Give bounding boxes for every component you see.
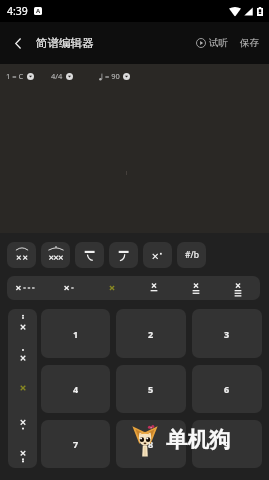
staticText: 简谱编辑器 [36, 36, 94, 50]
button[interactable]: octave -2 [8, 309, 37, 340]
button[interactable]: 4/4 [49, 68, 75, 84]
staticText: 9 [224, 438, 230, 450]
button[interactable]: note 2 [116, 309, 186, 358]
button[interactable]: octave 2 [8, 436, 37, 468]
staticText: 4 [73, 383, 79, 395]
button[interactable]: sharp flat [177, 242, 206, 268]
staticText: 8 [148, 438, 154, 450]
staticText: 单机狗 [166, 426, 231, 453]
staticText: 保存 [240, 37, 259, 49]
staticText: 2 [148, 328, 154, 340]
button[interactable]: grace note curve [75, 242, 104, 268]
button[interactable]: duration 3 [133, 276, 175, 300]
staticText: 1 = C [6, 71, 24, 81]
button[interactable]: octave -1 [8, 340, 37, 372]
button[interactable]: Back [0, 22, 36, 64]
button[interactable]: triplet [41, 242, 70, 268]
staticText: 6 [224, 383, 230, 395]
button[interactable]: note 5 [116, 365, 186, 413]
button[interactable]: duration 0 [7, 276, 49, 300]
staticText: 7 [73, 438, 79, 450]
button[interactable]: duration 4 [175, 276, 217, 300]
button[interactable]: grace note hook [109, 242, 138, 268]
staticText: 4/4 [51, 71, 63, 81]
staticText: 5 [148, 383, 154, 395]
button[interactable]: note 6 [192, 365, 262, 413]
button[interactable]: duration 2 [91, 276, 133, 300]
button[interactable]: octave 0 [8, 372, 37, 404]
button[interactable]: note 9 [192, 420, 262, 468]
staticText: = 90 [105, 71, 120, 81]
button[interactable]: note 1 [41, 309, 110, 358]
button[interactable]: = 90 [97, 68, 132, 84]
button[interactable]: dotted note [143, 242, 172, 268]
staticText: #/b [185, 249, 199, 261]
button[interactable]: note 3 [192, 309, 262, 358]
staticText: A [36, 7, 41, 15]
button[interactable]: 保存 [236, 31, 263, 55]
button[interactable]: duration 1 [49, 276, 91, 300]
button[interactable]: octave 1 [8, 404, 37, 436]
button[interactable]: 试听 [192, 31, 232, 55]
button[interactable]: tie two notes [7, 242, 36, 268]
button[interactable]: 1 = C [4, 68, 36, 84]
button[interactable]: note 4 [41, 365, 110, 413]
button[interactable]: note 8 [116, 420, 186, 468]
button[interactable]: note 7 [41, 420, 110, 468]
staticText: 1 [73, 328, 79, 340]
staticText: 3 [224, 328, 230, 340]
button[interactable]: duration 5 [217, 276, 259, 300]
staticText: 试听 [209, 37, 228, 49]
staticText: 4:39 [7, 4, 28, 18]
